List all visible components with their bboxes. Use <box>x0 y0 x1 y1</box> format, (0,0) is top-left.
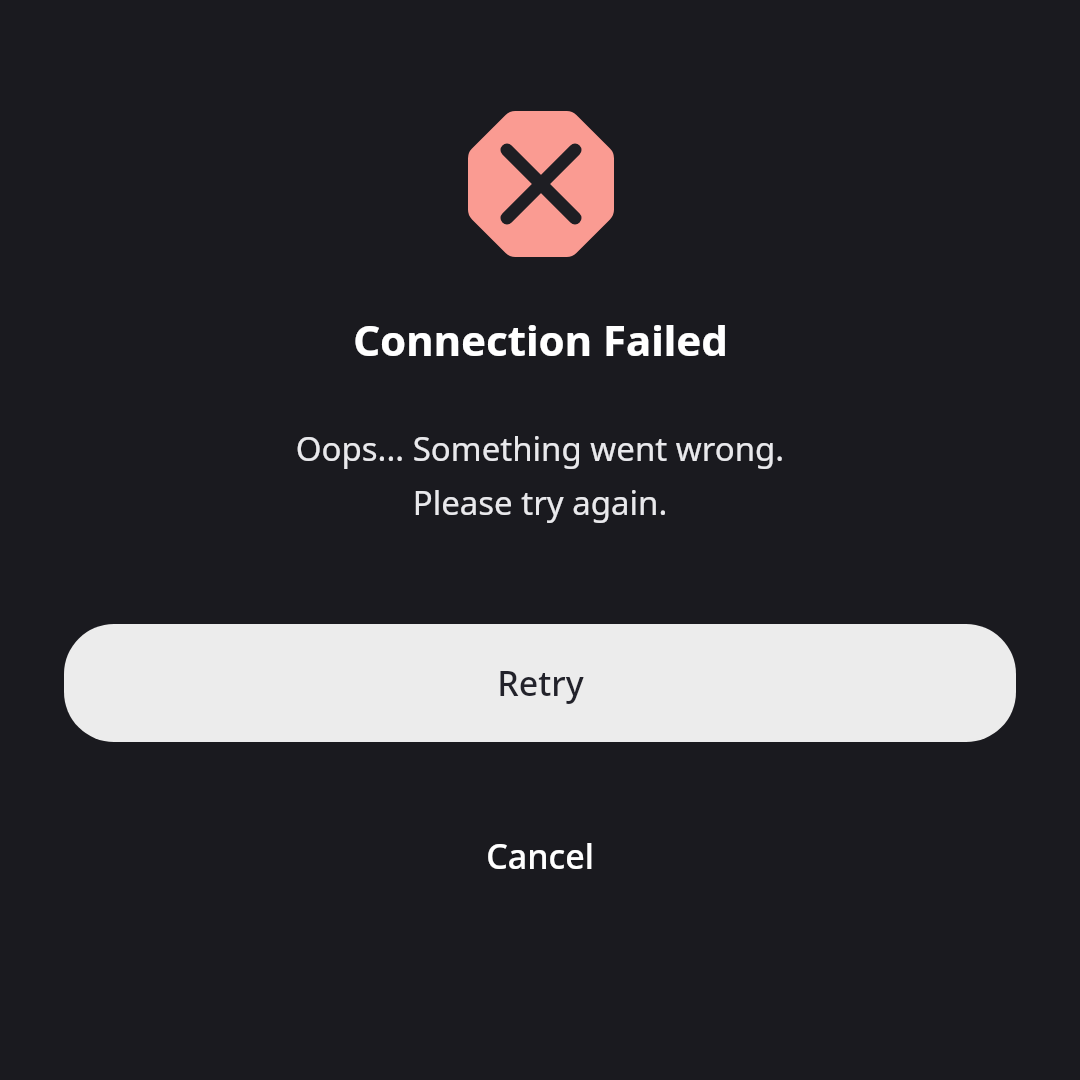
staticText: Oops... Something went wrong. Please try… <box>0 426 1080 524</box>
button[interactable]: Cancel <box>454 819 626 893</box>
staticText: Connection Failed <box>353 311 728 368</box>
button[interactable]: Retry <box>64 624 1016 742</box>
staticText: Retry <box>497 660 584 706</box>
staticText: Cancel <box>486 833 594 879</box>
